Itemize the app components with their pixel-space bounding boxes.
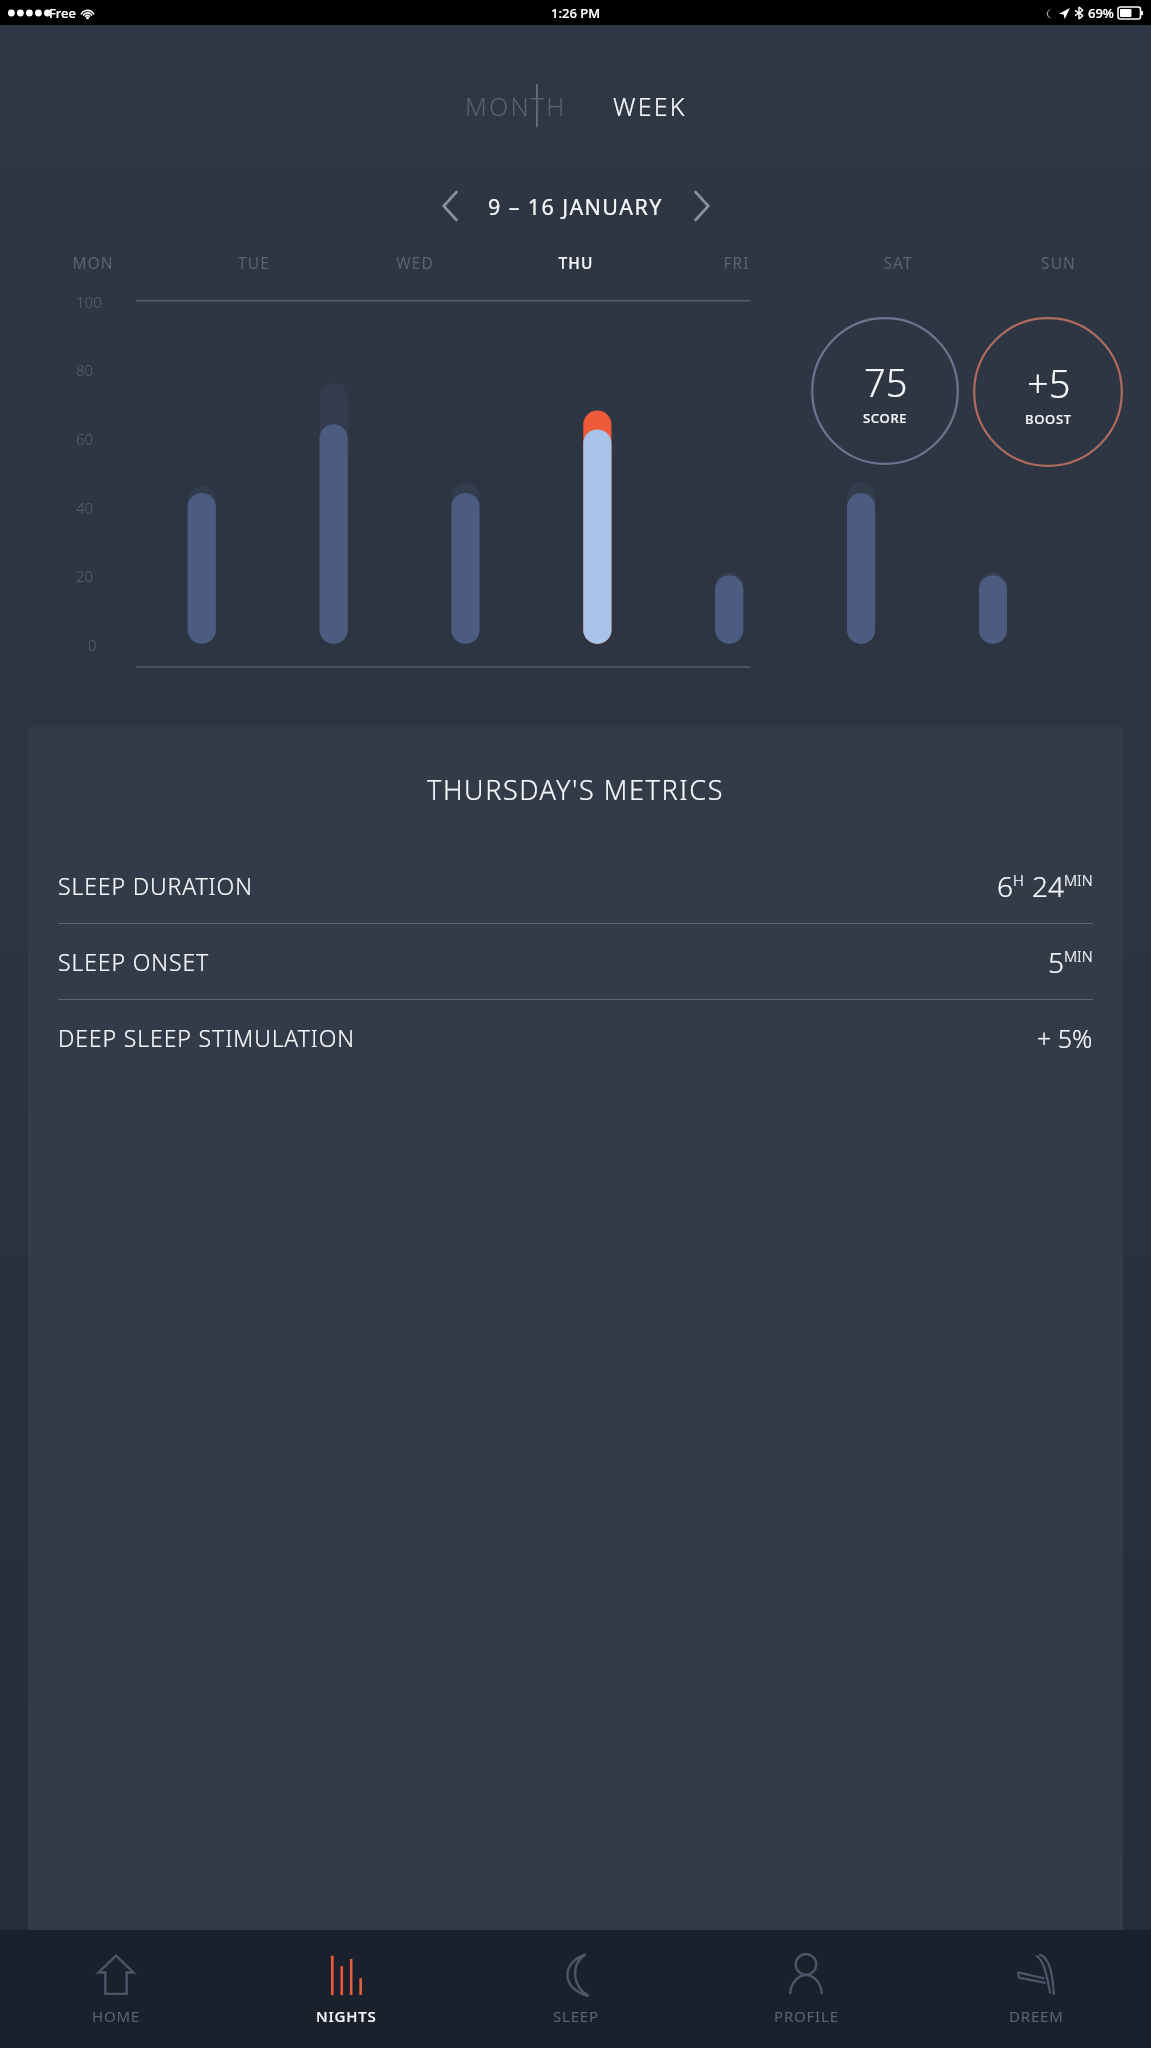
- staticText: +5: [1027, 357, 1071, 409]
- staticText: 75: [864, 356, 908, 408]
- button[interactable]: MON: [12, 245, 173, 279]
- button[interactable]: DEEP SLEEP STIMULATION: [28, 1000, 1123, 1075]
- staticText: SLEEP ONSET: [58, 946, 210, 977]
- staticText: 40: [76, 498, 94, 518]
- button[interactable]: TUE: [173, 245, 334, 279]
- staticText: FRI: [723, 252, 750, 273]
- button[interactable]: MONTH: [451, 83, 581, 129]
- button[interactable]: SLEEP DURATION: [28, 848, 1123, 923]
- staticText: 20: [76, 566, 94, 586]
- staticText: 24: [1032, 867, 1064, 905]
- staticText: MIN: [1064, 870, 1093, 890]
- staticText: 69%: [1088, 4, 1114, 22]
- staticText: 6: [997, 867, 1013, 905]
- staticText: HOME: [92, 2006, 140, 2026]
- button[interactable]: 75: [811, 317, 959, 465]
- staticText: SLEEP: [553, 2006, 599, 2026]
- staticText: DEEP SLEEP STIMULATION: [58, 1022, 355, 1053]
- staticText: 5: [1048, 943, 1064, 981]
- button[interactable]: HOME: [0, 1930, 231, 2048]
- staticText: SLEEP DURATION: [58, 870, 253, 901]
- staticText: WED: [396, 252, 434, 273]
- button[interactable]: FRI: [656, 245, 817, 279]
- staticText: MON: [72, 252, 114, 273]
- staticText: WEEK: [613, 89, 687, 123]
- button[interactable]: PROFILE: [691, 1930, 921, 2048]
- button[interactable]: SLEEP: [461, 1930, 691, 2048]
- staticText: Free: [49, 4, 77, 22]
- staticText: + 5%: [1037, 1021, 1093, 1055]
- button[interactable]: +5: [973, 317, 1123, 467]
- staticText: SAT: [883, 252, 913, 273]
- staticText: SUN: [1041, 252, 1076, 273]
- staticText: 100: [76, 292, 102, 312]
- staticText: TUE: [238, 252, 270, 273]
- staticText: NIGHTS: [316, 2006, 377, 2026]
- staticText: THURSDAY'S METRICS: [28, 771, 1123, 808]
- staticText: 0: [88, 635, 97, 655]
- button[interactable]: DREEM: [921, 1930, 1151, 2048]
- button[interactable]: Previous week: [430, 186, 470, 226]
- button[interactable]: Next week: [681, 186, 721, 226]
- button[interactable]: WEEK: [599, 83, 701, 129]
- staticText: 1:26 PM: [551, 4, 601, 22]
- button[interactable]: SLEEP ONSET: [28, 924, 1123, 999]
- button[interactable]: SUN: [978, 245, 1139, 279]
- staticText: THU: [558, 252, 594, 273]
- staticText: DREEM: [1009, 2006, 1064, 2026]
- staticText: H: [1013, 870, 1024, 890]
- staticText: MIN: [1064, 946, 1093, 966]
- staticText: PROFILE: [774, 2006, 839, 2026]
- button[interactable]: THU: [495, 245, 656, 279]
- staticText: BOOST: [1025, 410, 1072, 428]
- button[interactable]: NIGHTS: [231, 1930, 461, 2048]
- staticText: SCORE: [863, 409, 908, 427]
- staticText: 9 – 16 JANUARY: [488, 192, 663, 221]
- staticText: 60: [76, 429, 94, 449]
- staticText: 80: [76, 360, 94, 380]
- staticText: MONTH: [465, 89, 567, 123]
- button[interactable]: WED: [334, 245, 495, 279]
- button[interactable]: SAT: [817, 245, 978, 279]
